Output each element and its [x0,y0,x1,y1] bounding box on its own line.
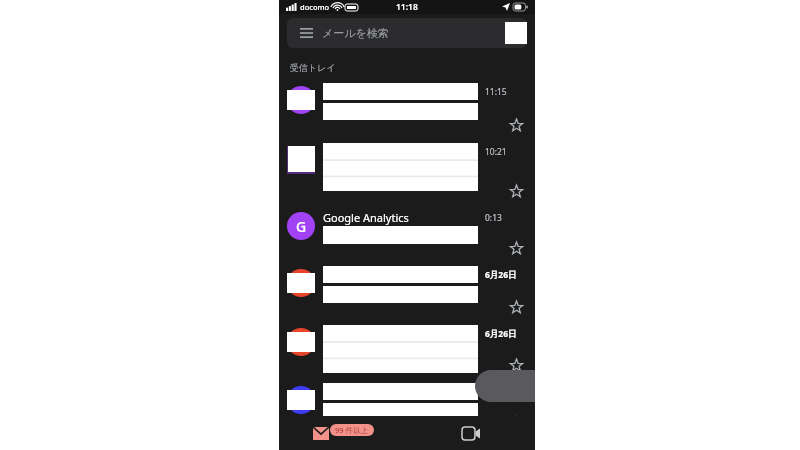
button[interactable]: G [279,204,535,261]
button[interactable]: Open navigation menu [287,18,527,48]
button[interactable]: Meet, video call [407,416,535,450]
button[interactable]: 6月26日 [279,320,535,378]
button[interactable]: Star [507,116,525,134]
button[interactable]: Mail, 99+ unread [279,416,407,450]
button[interactable]: Star [507,356,525,374]
button[interactable]: Star [507,298,525,316]
button[interactable]: 6月26日 [279,261,535,320]
staticText: 受信トレイ [290,62,336,73]
staticText: 10:21 [485,146,507,158]
button[interactable]: Open navigation menu [296,23,316,43]
staticText: 99 件以上 [335,425,369,435]
button[interactable]: Scroll position [475,370,535,402]
staticText: docomo [300,2,330,12]
staticText: Google Analytics [323,210,409,225]
staticText: G [296,217,307,236]
staticText: 0:13 [485,212,502,224]
staticText: 11:15 [485,86,507,98]
button[interactable]: Star [507,182,525,200]
button[interactable]: 10:21 [279,138,535,204]
staticText: 6月26日 [485,328,517,340]
staticText: メールを検索 [322,26,389,40]
staticText: 6月26日 [485,269,517,281]
staticText: 11:18 [396,1,418,13]
button[interactable]: Star [279,378,535,436]
button[interactable]: 11:15 [279,78,535,138]
button[interactable]: Star [507,239,525,257]
